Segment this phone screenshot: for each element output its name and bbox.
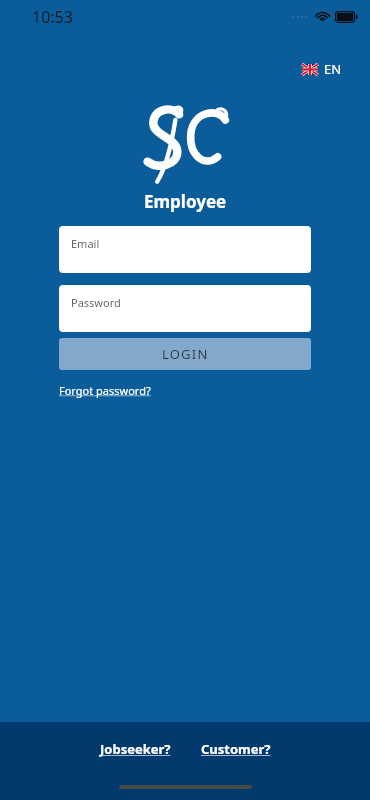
staticText: EN (324, 60, 342, 78)
button[interactable]: Forgot password? (59, 383, 151, 398)
staticText: Email (71, 236, 100, 251)
button[interactable]: Jobseeker? (96, 738, 175, 760)
staticText: Customer? (201, 740, 271, 758)
button[interactable]: Change language, English (298, 56, 346, 82)
button[interactable]: LOGIN (59, 338, 311, 370)
staticText: Password (71, 295, 121, 310)
staticText: 10:53 (32, 6, 73, 28)
staticText: Employee (144, 190, 227, 213)
button[interactable]: Customer? (197, 738, 275, 760)
staticText: Forgot password? (59, 383, 151, 398)
button[interactable]: Email (59, 226, 311, 273)
button[interactable]: Password (59, 285, 311, 332)
staticText: Jobseeker? (100, 740, 171, 758)
staticText: LOGIN (162, 345, 209, 363)
